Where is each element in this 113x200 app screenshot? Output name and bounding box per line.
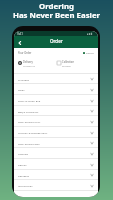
button[interactable]: Collection: [57, 60, 94, 68]
staticText: Basket: [86, 51, 94, 54]
staticText: OVEN BAKED PIZZA: [18, 142, 40, 145]
button[interactable]: Delivery: [18, 60, 57, 68]
button[interactable]: DESSERTS: [14, 170, 98, 180]
staticText: As Soon As: [23, 65, 35, 68]
button[interactable]: Basket: [83, 51, 94, 54]
button[interactable]: Back: [15, 38, 24, 47]
button[interactable]: SIDES: [14, 84, 98, 95]
button[interactable]: CHICKEN & BURGER MEAL: [14, 127, 98, 138]
button[interactable]: STARTERS: [14, 74, 98, 84]
staticText: 9:41: [17, 32, 23, 35]
staticText: 20 mins: [62, 65, 71, 68]
staticText: DESSERTS: [18, 174, 30, 177]
staticText: MILKSHAKES: [18, 184, 33, 187]
button[interactable]: OVEN BAKED PIZZA: [14, 138, 98, 148]
button[interactable]: OVEN BAKED PASTA: [14, 116, 98, 127]
staticText: Delivery: [23, 60, 33, 64]
staticText: BBQ & PUDDINGS: [18, 110, 39, 113]
staticText: OVEN BAKED PASTA: [18, 120, 41, 123]
staticText: CHICKEN & BURGER MEAL: [18, 131, 48, 134]
button[interactable]: BBQ & PUDDINGS: [14, 106, 98, 116]
staticText: COOKIES: [18, 152, 29, 155]
button[interactable]: DRINKS: [14, 159, 98, 170]
staticText: SIDES: [18, 88, 25, 91]
staticText: Your Order: [18, 51, 32, 55]
staticText: PIZZA KITCHEN BAR: [18, 99, 41, 102]
staticText: STARTERS: [18, 78, 29, 81]
button[interactable]: MILKSHAKES: [14, 180, 98, 191]
staticText: Has Never Been Easier: [0, 10, 113, 21]
button[interactable]: PIZZA KITCHEN BAR: [14, 95, 98, 106]
staticText: DRINKS: [18, 163, 27, 166]
staticText: Order: [50, 38, 63, 44]
staticText: Collection: [62, 60, 75, 64]
button[interactable]: COOKIES: [14, 148, 98, 159]
staticText: Ordering: [0, 1, 113, 12]
